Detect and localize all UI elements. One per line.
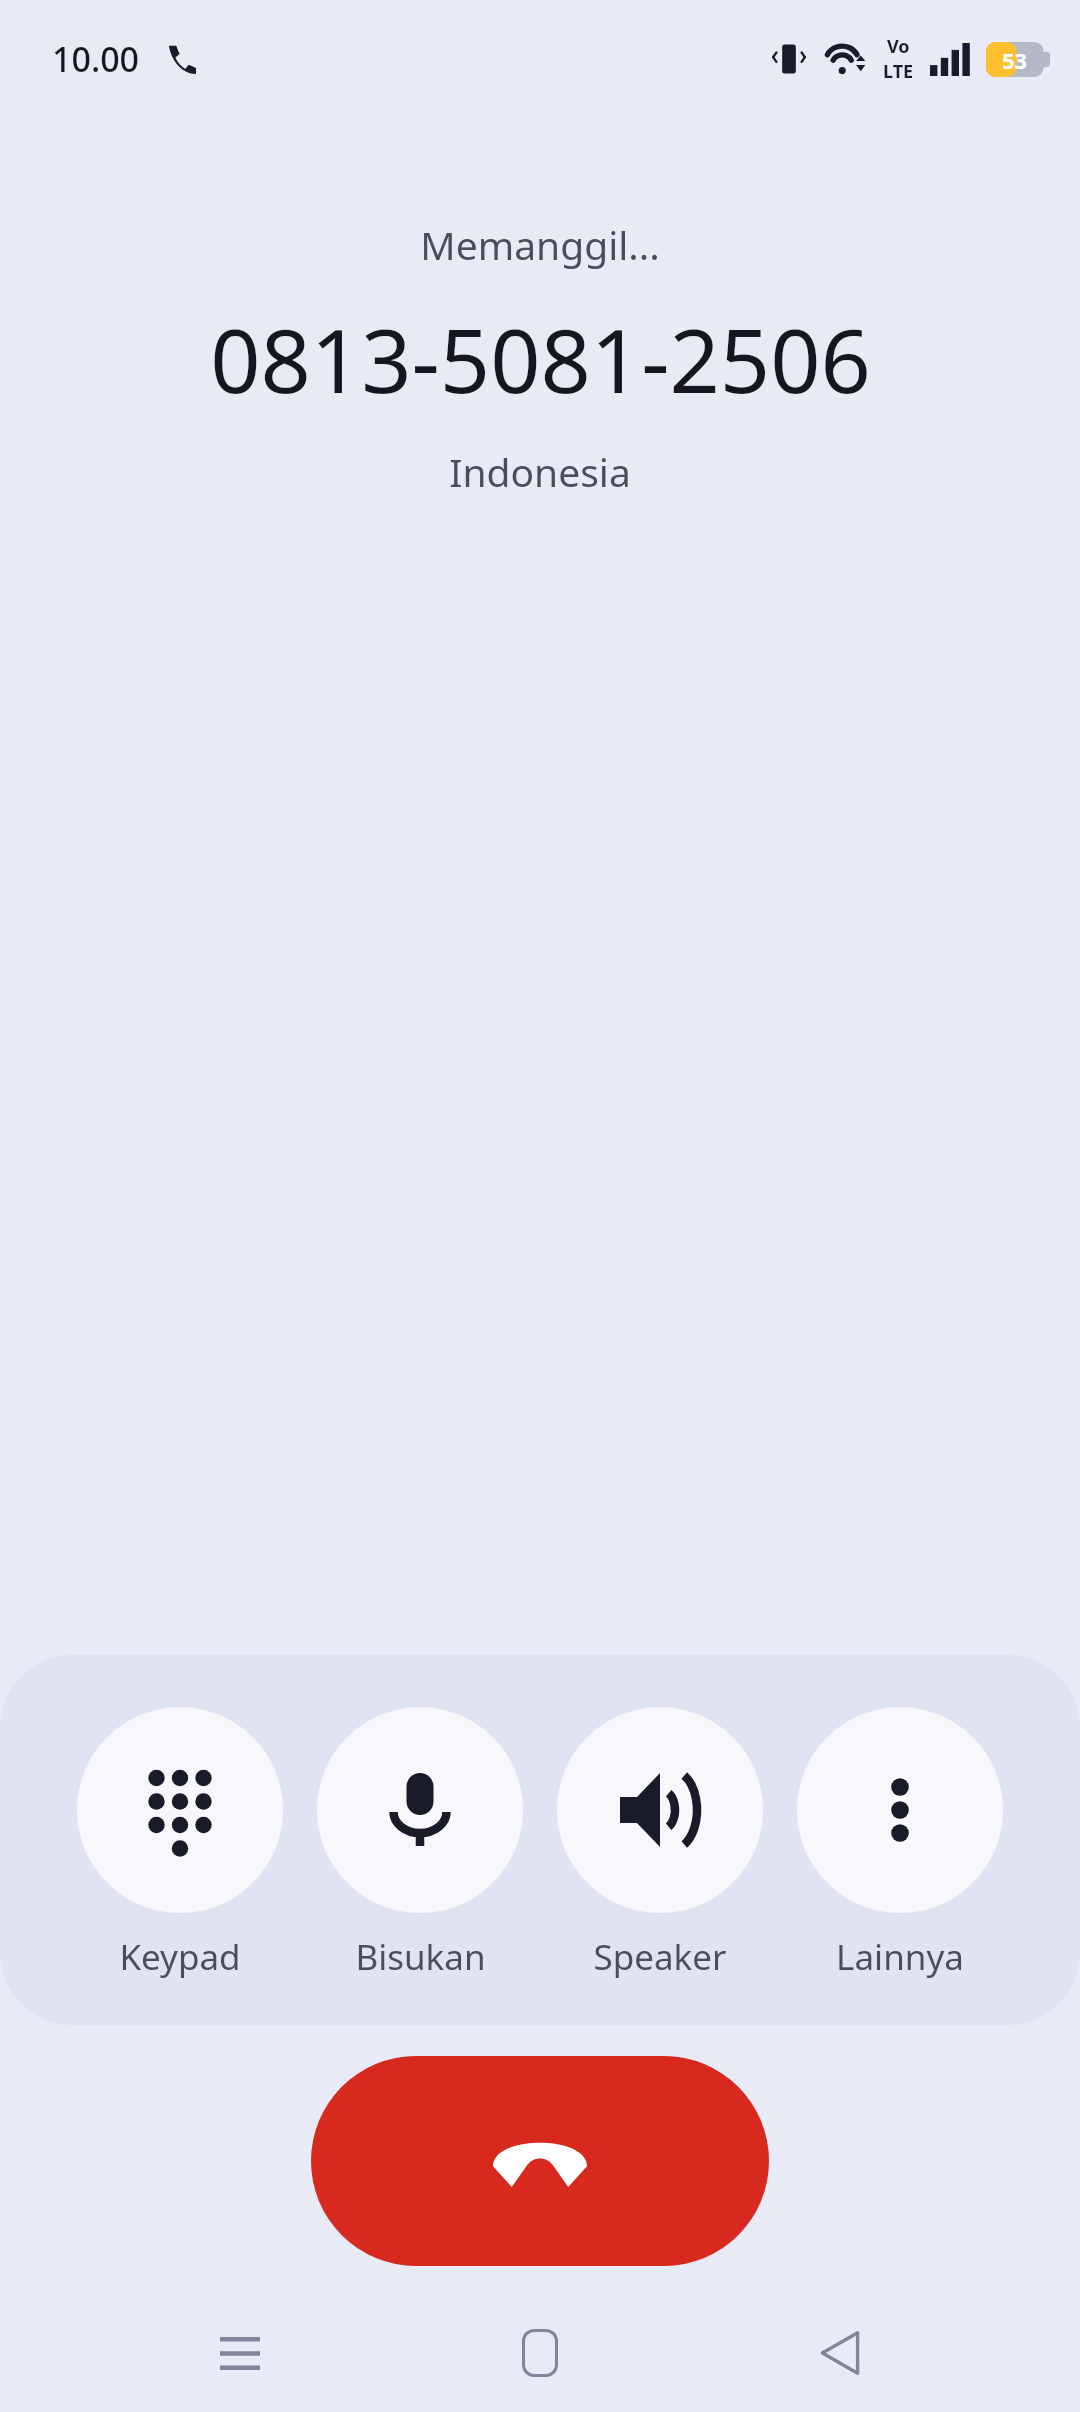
- staticText: LTE: [883, 59, 914, 84]
- staticText: Vo: [887, 34, 910, 59]
- button[interactable]: Back: [780, 2294, 900, 2412]
- button[interactable]: Home: [480, 2294, 600, 2412]
- staticText: Speaker: [593, 1933, 727, 1981]
- button[interactable]: Lainnya: [797, 1707, 1003, 1981]
- button[interactable]: Keypad: [77, 1707, 283, 1981]
- staticText: Bisukan: [355, 1933, 486, 1981]
- staticText: 53: [1002, 45, 1028, 75]
- staticText: Memanggil...: [420, 218, 660, 271]
- button[interactable]: Speaker: [557, 1707, 763, 1981]
- staticText: Lainnya: [836, 1933, 964, 1981]
- staticText: Indonesia: [449, 445, 631, 498]
- button[interactable]: Bisukan: [317, 1707, 523, 1981]
- staticText: 10.00: [52, 36, 140, 82]
- staticText: Keypad: [119, 1933, 241, 1981]
- button[interactable]: Recents: [180, 2294, 300, 2412]
- staticText: 0813-5081-2506: [210, 299, 871, 419]
- button[interactable]: End call: [311, 2056, 769, 2266]
